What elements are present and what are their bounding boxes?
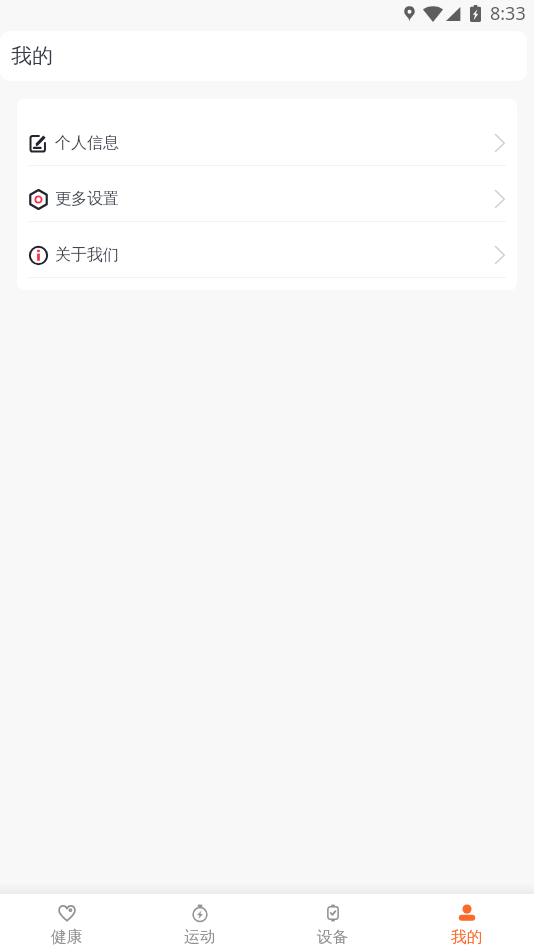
button[interactable]: 个人信息 (17, 115, 517, 171)
staticText: 个人信息 (55, 133, 119, 153)
button[interactable]: 健康 (0, 894, 133, 950)
staticText: 更多设置 (55, 189, 119, 209)
staticText: 我的 (11, 43, 53, 69)
staticText: 健康 (51, 927, 83, 947)
button[interactable]: 运动 (133, 894, 266, 950)
staticText: 我的 (451, 927, 483, 947)
button[interactable]: 更多设置 (17, 171, 517, 227)
button[interactable]: 我的 (400, 894, 534, 950)
staticText: 设备 (317, 927, 349, 947)
button[interactable]: 关于我们 (17, 227, 517, 283)
button[interactable]: 设备 (266, 894, 400, 950)
staticText: 8:33 (490, 1, 526, 26)
staticText: 关于我们 (55, 245, 119, 265)
staticText: 运动 (184, 927, 216, 947)
